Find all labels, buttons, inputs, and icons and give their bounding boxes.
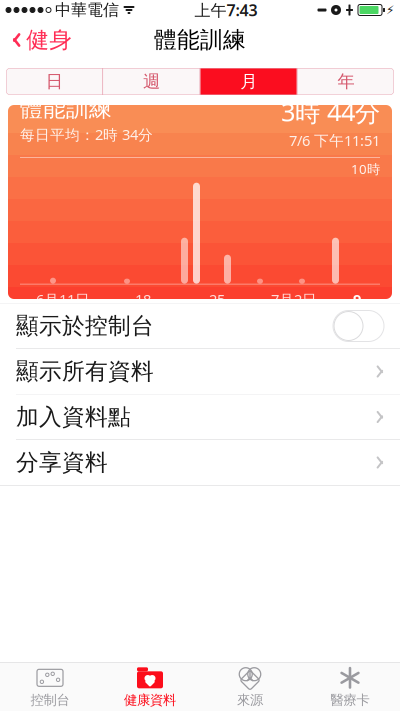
button[interactable]: 顯示於控制台 [0,303,400,348]
staticText: 年 [337,71,354,92]
staticText: 健身 [26,26,72,54]
staticText: 上午7:43 [194,0,257,21]
button[interactable]: 週 [103,68,199,95]
button[interactable]: 日 [6,68,102,95]
staticText: 醫療卡 [330,692,369,708]
staticText: ⚡︎ [386,3,394,17]
staticText: 健康資料 [124,692,176,708]
button[interactable]: 醫療卡 [300,663,400,711]
staticText: 加入資料點 [16,403,131,431]
button[interactable]: 分享資料 [0,440,400,485]
staticText: 7月2日 [271,290,317,309]
button[interactable]: 月 [200,68,297,95]
staticText: 控制台 [30,692,69,708]
button[interactable]: 控制台 [0,663,100,711]
staticText: 7/6 下午11:51 [289,130,380,150]
staticText: 顯示所有資料 [16,358,154,385]
button[interactable]: 加入資料點 [0,394,400,439]
staticText: 6月11日 [36,290,90,309]
button[interactable]: 來源 [200,663,300,711]
staticText: 10時 [351,160,380,178]
button[interactable]: 顯示所有資料 [0,349,400,394]
staticText: 9 [353,290,361,309]
staticText: 分享資料 [16,449,108,476]
button[interactable]: 年 [298,68,394,95]
staticText: 月 [240,71,257,92]
staticText: 來源 [237,692,263,708]
button[interactable]: 健身 [0,18,84,62]
button[interactable]: 健康資料 [100,663,200,711]
staticText: 體能訓練 [20,95,112,123]
staticText: 18 [135,290,151,309]
staticText: 顯示於控制台 [16,312,154,340]
staticText: 體能訓練 [154,26,246,54]
staticText: 3時 44分 [281,95,380,128]
staticText: 日 [46,71,63,92]
staticText: 週 [143,71,160,92]
staticText: 25 [209,290,225,309]
staticText: 中華電信 [55,0,119,20]
staticText: 每日平均：2時 34分 [20,125,153,144]
